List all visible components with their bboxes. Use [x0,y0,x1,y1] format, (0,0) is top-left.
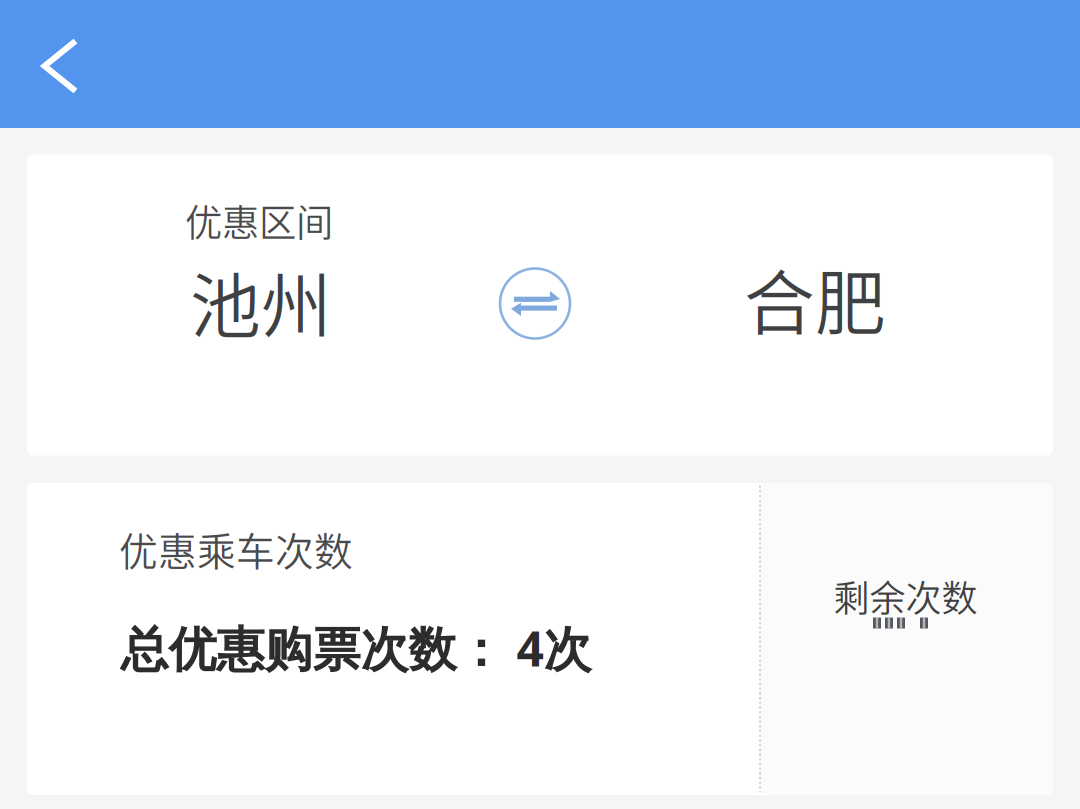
button[interactable]: 剩余次数 [760,483,1053,795]
staticText: 合肥 [744,247,886,350]
button[interactable]: Swap origin and destination [487,255,583,351]
button[interactable]: 池州 [156,253,366,349]
staticText: 剩余次数 [833,570,977,622]
staticText: 总优惠购票次数： 4次 [120,615,591,681]
button[interactable]: Back [17,2,103,130]
staticText: 优惠乘车次数 [119,521,353,577]
staticText: 池州 [190,250,332,353]
staticText: 优惠区间 [185,193,333,248]
button[interactable]: 合肥 [710,250,920,346]
